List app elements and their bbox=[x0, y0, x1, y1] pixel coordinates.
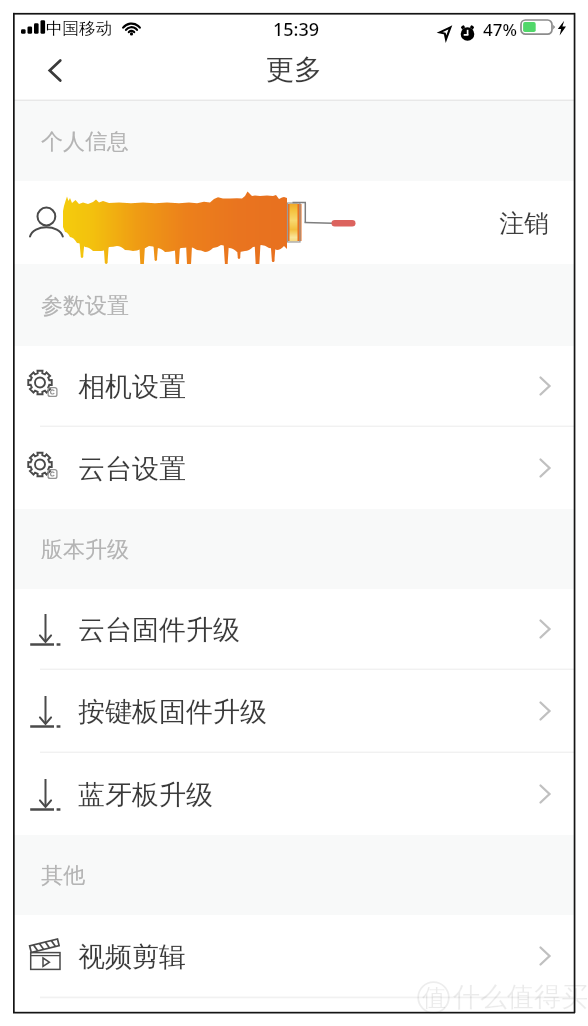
staticText: 个人信息 bbox=[41, 128, 129, 156]
staticText: 中国移动 bbox=[46, 18, 112, 39]
staticText: 值 bbox=[422, 983, 446, 1013]
staticText: 版本升级 bbox=[41, 536, 129, 564]
button[interactable]: 蓝牙板升级 bbox=[14, 753, 574, 835]
staticText: 参数设置 bbox=[41, 292, 129, 320]
staticText: 什么值得买 bbox=[453, 980, 588, 1014]
staticText: 更多 bbox=[266, 52, 322, 87]
button[interactable]: 视频剪辑 bbox=[14, 915, 574, 997]
button[interactable]: 相机设置 bbox=[14, 346, 574, 426]
button[interactable]: 云台设置 bbox=[14, 427, 574, 509]
staticText: 蓝牙板升级 bbox=[78, 778, 213, 812]
staticText: 视频剪辑 bbox=[78, 940, 186, 974]
button[interactable]: 注销 bbox=[14, 181, 574, 264]
staticText: 其他 bbox=[41, 862, 85, 890]
staticText: 15:39 bbox=[273, 17, 320, 42]
button[interactable]: Back bbox=[32, 51, 76, 95]
staticText: 相机设置 bbox=[78, 370, 186, 404]
staticText: 云台固件升级 bbox=[78, 613, 240, 647]
button[interactable]: 按键板固件升级 bbox=[14, 670, 574, 752]
button[interactable]: 云台固件升级 bbox=[14, 589, 574, 669]
staticText: 注销 bbox=[499, 208, 549, 239]
staticText: 按键板固件升级 bbox=[78, 695, 267, 729]
staticText: 47% bbox=[483, 18, 517, 41]
staticText: 云台设置 bbox=[78, 452, 186, 486]
